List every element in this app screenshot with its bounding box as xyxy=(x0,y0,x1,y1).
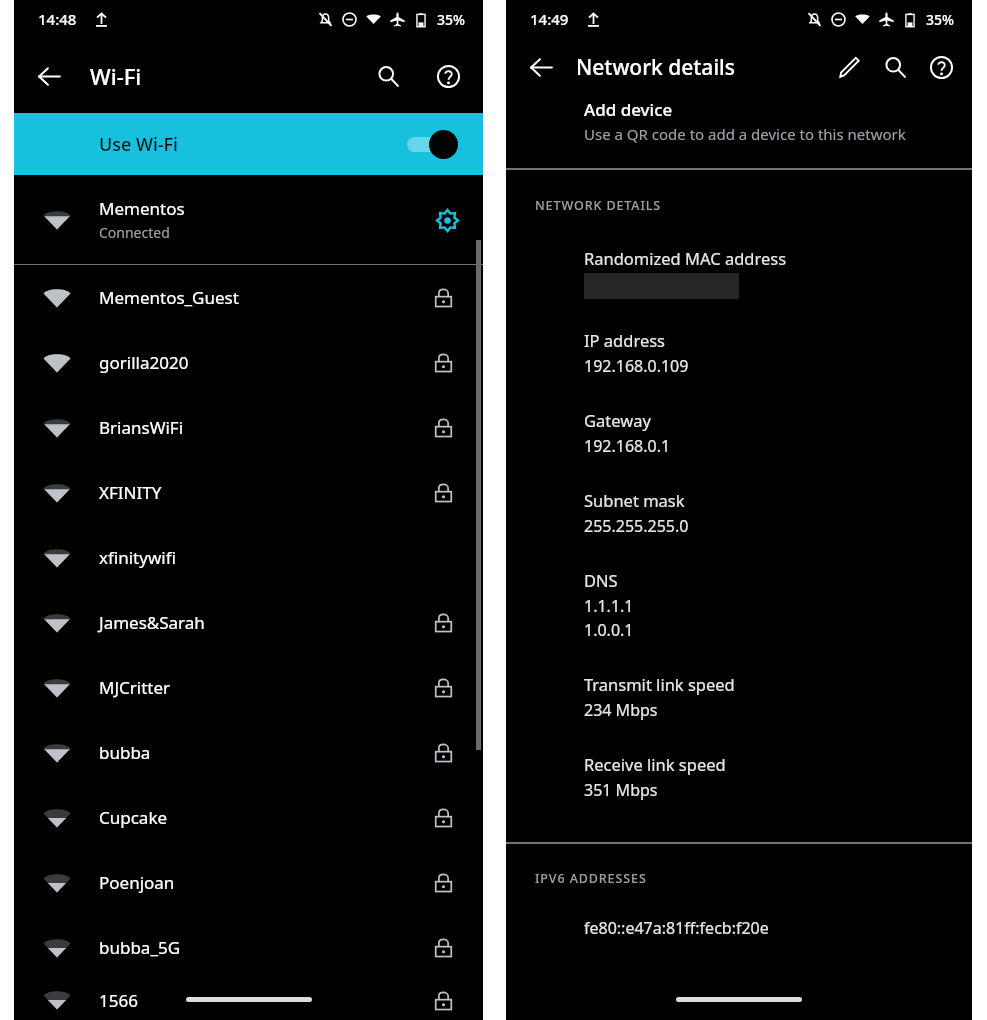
button[interactable]: Transmit link speed xyxy=(506,673,972,753)
button[interactable]: IP address xyxy=(506,329,972,409)
staticText: 192.168.0.109 xyxy=(584,355,689,377)
staticText: Poenjoan xyxy=(99,871,433,894)
staticText: Transmit link speed xyxy=(584,673,735,695)
button[interactable]: Use Wi-Fi xyxy=(14,113,483,175)
button[interactable]: Add device xyxy=(506,96,972,144)
staticText: 35% xyxy=(926,10,954,29)
button[interactable]: bubba xyxy=(14,720,483,785)
staticText: 14:49 xyxy=(530,9,569,29)
button[interactable]: Help xyxy=(918,44,964,90)
staticText: BriansWiFi xyxy=(99,416,433,439)
staticText: 14:48 xyxy=(38,9,77,29)
staticText: XFINITY xyxy=(99,481,433,504)
staticText: James&Sarah xyxy=(99,611,433,634)
staticText: 1.1.1.1 xyxy=(584,595,634,617)
staticText: IP address xyxy=(584,329,666,351)
button[interactable]: Receive link speed xyxy=(506,753,972,833)
staticText: MJCritter xyxy=(99,676,433,699)
staticText: Randomized MAC address xyxy=(584,247,787,269)
button[interactable]: Edit xyxy=(826,44,872,90)
staticText: xfinitywifi xyxy=(99,546,454,569)
button[interactable]: Gateway xyxy=(506,409,972,489)
button[interactable]: bubba_5G xyxy=(14,915,483,980)
button[interactable]: Network settings xyxy=(423,196,471,244)
staticText: Connected xyxy=(99,223,170,242)
button[interactable]: Back xyxy=(518,44,564,90)
button[interactable]: Cupcake xyxy=(14,785,483,850)
button[interactable]: 1566 xyxy=(14,980,483,1020)
staticText: Gateway xyxy=(584,409,651,431)
staticText: bubba_5G xyxy=(99,936,433,959)
button[interactable]: Subnet mask xyxy=(506,489,972,569)
staticText: Subnet mask xyxy=(584,489,685,511)
button[interactable]: DNS xyxy=(506,569,972,673)
staticText: NETWORK DETAILS xyxy=(535,197,662,214)
button[interactable]: Help xyxy=(425,53,471,99)
staticText: gorilla2020 xyxy=(99,351,433,374)
button[interactable]: Search xyxy=(365,53,411,99)
button[interactable]: Poenjoan xyxy=(14,850,483,915)
staticText: 234 Mbps xyxy=(584,699,658,721)
staticText: Mementos_Guest xyxy=(99,286,433,309)
staticText: bubba xyxy=(99,741,433,764)
staticText: 35% xyxy=(437,10,465,29)
staticText: 192.168.0.1 xyxy=(584,435,671,457)
button[interactable]: XFINITY xyxy=(14,460,483,525)
staticText: 1566 xyxy=(99,989,433,1012)
staticText: 1.0.0.1 xyxy=(584,619,634,641)
staticText: 255.255.255.0 xyxy=(584,515,689,537)
staticText: Wi-Fi xyxy=(90,61,142,91)
button[interactable]: Search xyxy=(872,44,918,90)
staticText: IPV6 ADDRESSES xyxy=(535,870,647,887)
staticText: 351 Mbps xyxy=(584,779,658,801)
staticText: Use a QR code to add a device to this ne… xyxy=(584,124,906,144)
button[interactable]: gorilla2020 xyxy=(14,330,483,395)
button[interactable]: Mementos xyxy=(14,175,483,264)
staticText: Network details xyxy=(576,53,735,82)
button[interactable]: James&Sarah xyxy=(14,590,483,655)
staticText: fe80::e47a:81ff:fecb:f20e xyxy=(584,917,769,939)
button[interactable]: BriansWiFi xyxy=(14,395,483,460)
staticText: Mementos xyxy=(99,197,185,220)
staticText: Receive link speed xyxy=(584,753,726,775)
staticText: DNS xyxy=(584,569,618,591)
staticText: Cupcake xyxy=(99,806,433,829)
button[interactable]: Back xyxy=(26,53,72,99)
button[interactable]: xfinitywifi xyxy=(14,525,483,590)
button[interactable]: Mementos_Guest xyxy=(14,265,483,330)
button[interactable]: MJCritter xyxy=(14,655,483,720)
staticText: Add device xyxy=(584,98,673,121)
button[interactable]: Randomized MAC address xyxy=(506,247,972,329)
staticText: Use Wi-Fi xyxy=(99,132,178,157)
